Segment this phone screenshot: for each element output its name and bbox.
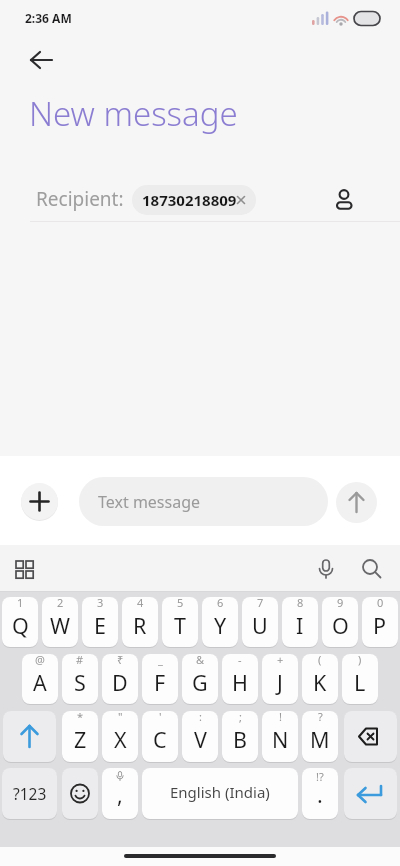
button[interactable]: * xyxy=(62,711,98,762)
staticText: " xyxy=(118,711,123,724)
staticText: ₹ xyxy=(117,654,124,667)
button[interactable]: ; xyxy=(222,711,258,762)
button[interactable]: _ xyxy=(142,654,178,704)
button[interactable]: 5 xyxy=(162,597,198,647)
staticText: B xyxy=(233,725,247,754)
button[interactable] xyxy=(314,557,338,581)
button[interactable]: 2 xyxy=(42,597,78,647)
button[interactable] xyxy=(344,711,397,762)
staticText: & xyxy=(196,654,205,667)
staticText: 2:36 AM xyxy=(25,10,72,26)
button[interactable] xyxy=(13,558,37,582)
staticText: D xyxy=(112,668,128,697)
button[interactable]: ' xyxy=(142,711,178,762)
staticText: @ xyxy=(35,654,45,667)
staticText: W xyxy=(50,611,70,640)
button[interactable]: : xyxy=(182,711,218,762)
staticText: ( xyxy=(318,654,322,667)
staticText: 7 xyxy=(257,597,264,610)
button[interactable] xyxy=(360,557,384,581)
staticText: New message xyxy=(29,91,238,136)
staticText: 5 xyxy=(177,597,184,610)
staticText: 8 xyxy=(297,597,304,610)
button[interactable] xyxy=(332,184,358,214)
button[interactable]: ! xyxy=(262,711,298,762)
staticText: : xyxy=(199,711,202,724)
staticText: 6 xyxy=(217,597,224,610)
button[interactable]: 7 xyxy=(242,597,278,647)
button[interactable] xyxy=(21,483,58,520)
staticText: S xyxy=(74,668,86,697)
staticText: Z xyxy=(74,725,87,754)
staticText: Y xyxy=(214,611,227,640)
staticText: K xyxy=(313,668,327,697)
button[interactable]: " xyxy=(102,711,138,762)
staticText: O xyxy=(332,611,349,640)
button[interactable]: - xyxy=(222,654,258,704)
staticText: 3 xyxy=(97,597,104,610)
button[interactable]: ( xyxy=(302,654,338,704)
staticText: , xyxy=(117,780,123,809)
button[interactable]: 8 xyxy=(282,597,318,647)
staticText: 4 xyxy=(137,597,144,610)
staticText: !? xyxy=(316,769,324,784)
staticText: 9 xyxy=(337,597,344,610)
button[interactable]: @ xyxy=(22,654,58,704)
button[interactable]: 0 xyxy=(362,597,398,647)
staticText: H xyxy=(232,668,248,697)
button[interactable]: ? xyxy=(302,711,338,762)
button[interactable]: English (India) xyxy=(142,768,298,819)
staticText: _ xyxy=(158,654,163,667)
staticText: P xyxy=(373,611,387,640)
staticText: M xyxy=(310,725,330,754)
button[interactable] xyxy=(336,482,377,523)
button[interactable]: 1 xyxy=(2,597,38,647)
staticText: A xyxy=(33,668,47,697)
staticText: # xyxy=(76,654,84,667)
staticText: Recipient: xyxy=(36,186,124,212)
staticText: X xyxy=(114,725,127,754)
staticText: U xyxy=(252,611,268,640)
button[interactable]: Text message xyxy=(79,477,328,526)
button[interactable]: 4 xyxy=(122,597,158,647)
button[interactable] xyxy=(344,768,397,819)
button[interactable]: 6 xyxy=(202,597,238,647)
staticText: 0 xyxy=(377,597,384,610)
button[interactable]: ?123 xyxy=(2,768,57,819)
staticText: J xyxy=(277,668,283,697)
staticText: T xyxy=(174,611,186,640)
staticText: ? xyxy=(318,711,323,724)
staticText: ) xyxy=(358,654,362,667)
button[interactable]: ) xyxy=(342,654,378,704)
staticText: ! xyxy=(279,711,282,724)
staticText: 2 xyxy=(57,597,64,610)
staticText: ; xyxy=(239,711,242,724)
staticText: 1 xyxy=(17,597,24,610)
button[interactable]: 3 xyxy=(82,597,118,647)
staticText: V xyxy=(194,725,207,754)
button[interactable] xyxy=(26,46,58,74)
button[interactable]: , xyxy=(102,768,138,819)
button[interactable] xyxy=(3,711,56,762)
staticText: E xyxy=(94,611,106,640)
button[interactable]: # xyxy=(62,654,98,704)
button[interactable]: !? xyxy=(302,768,338,819)
staticText: * xyxy=(77,711,84,724)
staticText: + xyxy=(277,654,284,667)
staticText: F xyxy=(154,668,166,697)
staticText: ' xyxy=(159,711,162,724)
staticText: L xyxy=(354,668,366,697)
staticText: ?123 xyxy=(13,783,47,804)
staticText: Q xyxy=(12,611,29,640)
button[interactable]: ₹ xyxy=(102,654,138,704)
staticText: I xyxy=(296,611,304,640)
button[interactable] xyxy=(62,768,98,819)
staticText: 18730218809 xyxy=(142,190,237,210)
button[interactable]: + xyxy=(262,654,298,704)
staticText: . xyxy=(317,780,323,809)
staticText: C xyxy=(153,725,167,754)
button[interactable]: 18730218809 xyxy=(132,185,256,215)
button[interactable]: & xyxy=(182,654,218,704)
staticText: G xyxy=(192,668,208,697)
button[interactable]: 9 xyxy=(322,597,358,647)
